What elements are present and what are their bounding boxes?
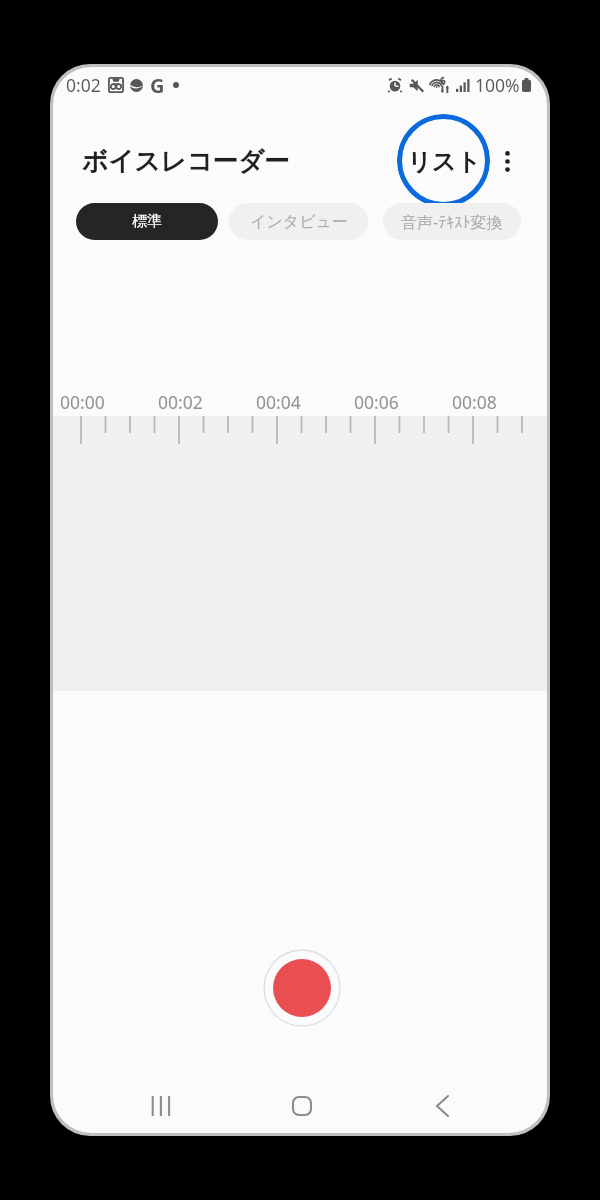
- button[interactable]: 標準: [76, 203, 218, 240]
- staticText: インタビュー: [250, 212, 348, 232]
- button[interactable]: 音声-ﾃｷｽﾄ変換: [383, 203, 521, 240]
- staticText: 00:06: [354, 390, 399, 414]
- button[interactable]: その他のオプション: [490, 144, 525, 179]
- button[interactable]: ホーム: [282, 1086, 322, 1126]
- button[interactable]: 最近のアプリ: [141, 1086, 181, 1126]
- staticText: 標準: [132, 212, 162, 231]
- staticText: 00:00: [60, 390, 105, 414]
- button[interactable]: リスト: [397, 114, 490, 207]
- staticText: 00:04: [256, 390, 301, 414]
- staticText: 00:02: [158, 390, 203, 414]
- staticText: 音声-ﾃｷｽﾄ変換: [401, 211, 503, 233]
- button[interactable]: 戻る: [422, 1086, 462, 1126]
- button[interactable]: 録音: [263, 949, 341, 1027]
- staticText: リスト: [407, 147, 481, 177]
- staticText: 100%: [475, 73, 520, 97]
- staticText: 0:02: [66, 73, 101, 97]
- staticText: 00:08: [452, 390, 497, 414]
- staticText: G: [150, 72, 165, 98]
- button[interactable]: インタビュー: [229, 203, 368, 240]
- staticText: ボイスレコーダー: [82, 145, 290, 177]
